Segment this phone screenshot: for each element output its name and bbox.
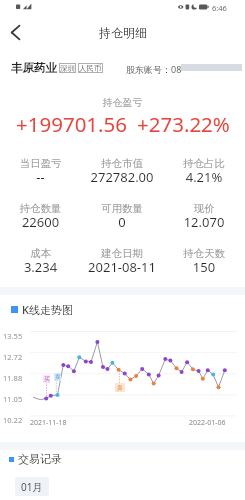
staticText: 6:46 — [212, 3, 227, 13]
staticText: 150 — [163, 258, 245, 276]
staticText: 2021-11-18 — [30, 418, 67, 428]
staticText: 建仓日期 — [81, 247, 163, 260]
staticText: 成本 — [0, 247, 81, 260]
staticText: 13.55 — [3, 331, 23, 341]
staticText: -- — [0, 168, 81, 186]
staticText: 可用数量 — [81, 202, 163, 215]
staticText: 股东账号：08 — [126, 63, 182, 75]
staticText: 2021-08-11 — [81, 258, 163, 276]
staticText: 11.88 — [3, 373, 23, 383]
staticText: 持仓明细 — [99, 25, 147, 40]
staticText: 272782.00 — [81, 168, 163, 186]
staticText: 12.070 — [163, 213, 245, 231]
staticText: 持仓天数 — [163, 247, 245, 260]
staticText: 买 — [44, 375, 50, 383]
staticText: 持仓市值 — [81, 157, 163, 170]
staticText: 人民币 — [79, 64, 102, 73]
staticText: K线走势图 — [22, 302, 73, 317]
staticText: 交易记录 — [18, 452, 62, 466]
staticText: 现价 — [163, 202, 245, 215]
staticText: 10.22 — [3, 415, 23, 425]
staticText: 深圳 — [60, 64, 75, 73]
staticText: 持仓数量 — [0, 202, 81, 215]
staticText: 卖 — [55, 373, 61, 381]
staticText: 22600 — [0, 213, 81, 231]
staticText: 01月 — [21, 480, 43, 494]
staticText: 丰原药业 — [11, 61, 57, 75]
staticText: +199701.56 — [16, 110, 128, 138]
button[interactable]: Back — [0, 17, 30, 47]
button[interactable]: 01月 — [15, 477, 49, 496]
staticText: 当日盈亏 — [0, 157, 81, 170]
staticText: 3.234 — [0, 258, 81, 276]
staticText: 0 — [81, 213, 163, 231]
staticText: 11.05 — [3, 394, 23, 404]
staticText: 12.72 — [3, 352, 23, 362]
staticText: 持仓盈亏 — [0, 96, 245, 109]
staticText: 4.21% — [163, 168, 245, 186]
staticText: 2022-01-06 — [189, 418, 226, 428]
staticText: 持仓占比 — [163, 157, 245, 170]
staticText: +273.22% — [137, 110, 230, 138]
staticText: 卖 — [117, 384, 123, 392]
